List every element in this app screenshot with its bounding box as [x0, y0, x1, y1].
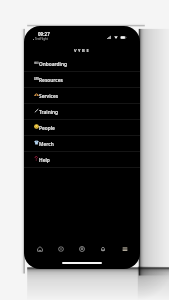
staticText: People: [39, 125, 55, 132]
button[interactable]: Notifications: [95, 241, 111, 257]
staticText: Merch: [39, 141, 54, 148]
button[interactable]: Help: [24, 152, 140, 168]
staticText: Help: [39, 157, 50, 164]
button[interactable]: Onboarding: [24, 56, 140, 72]
staticText: Training: [39, 109, 59, 116]
staticText: TestFlight: [35, 37, 48, 41]
button[interactable]: Resources: [24, 72, 140, 88]
staticText: Onboarding: [39, 61, 68, 68]
button[interactable]: Profile: [74, 241, 90, 257]
staticText: VYBE: [74, 48, 91, 54]
button[interactable]: Merch: [24, 136, 140, 152]
button[interactable]: Services: [24, 88, 140, 104]
staticText: Resources: [39, 77, 63, 84]
button[interactable]: Menu: [117, 241, 133, 257]
staticText: 09:27: [38, 31, 50, 37]
button[interactable]: Training: [24, 104, 140, 120]
staticText: Services: [39, 93, 59, 100]
button[interactable]: Home: [32, 241, 48, 257]
button[interactable]: Messages: [53, 241, 69, 257]
button[interactable]: People: [24, 120, 140, 136]
